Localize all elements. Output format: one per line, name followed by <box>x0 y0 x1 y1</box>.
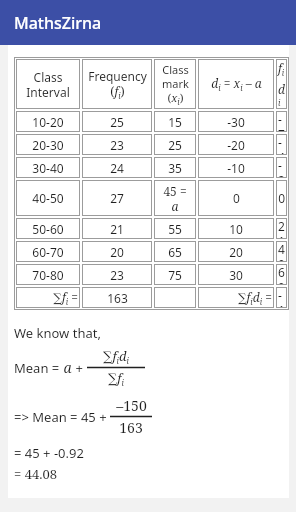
staticText: 24 <box>110 160 124 176</box>
staticText: a <box>63 358 72 377</box>
staticText: 55 <box>168 221 182 237</box>
staticText: –150 <box>116 396 147 415</box>
staticText: 27 <box>110 190 124 206</box>
button[interactable]: MathsZirna app bar <box>0 0 296 45</box>
staticText: 25 <box>110 114 124 130</box>
staticText: 20 <box>110 244 124 260</box>
staticText: 21 <box>110 221 124 237</box>
staticText: => Mean = 45 + <box>14 408 110 426</box>
staticText: 10-20 <box>32 114 64 130</box>
staticText: ∑fidi = <box>200 289 272 307</box>
staticText: 70-80 <box>32 267 64 283</box>
staticText: 35 <box>168 160 182 176</box>
staticText: ∑fi <box>108 369 124 388</box>
staticText: 25 <box>168 137 182 153</box>
staticText: + <box>72 359 87 377</box>
staticText: 75 <box>168 267 182 283</box>
staticText: 20 <box>229 244 243 260</box>
staticText: Mean = <box>14 359 63 377</box>
staticText: -20 <box>227 137 245 153</box>
staticText: 50-60 <box>32 221 64 237</box>
staticText: -460 <box>278 134 285 155</box>
staticText: ∑fi = <box>18 289 78 307</box>
staticText: 60-70 <box>32 244 64 260</box>
staticText: 23 <box>110 267 124 283</box>
staticText: 163 <box>119 418 143 437</box>
staticText: Frequency (fi) <box>88 68 147 101</box>
staticText: 30-40 <box>32 160 64 176</box>
staticText: -750 <box>278 111 285 132</box>
staticText: 0 <box>278 190 285 206</box>
staticText: -30 <box>227 114 245 130</box>
staticText: -10 <box>227 160 245 176</box>
staticText: 20-30 <box>32 137 64 153</box>
staticText: Class mark (xi) <box>162 62 189 107</box>
staticText: MathsZirna <box>14 12 102 34</box>
staticText: 30 <box>229 267 243 283</box>
staticText: 45 = a <box>163 183 187 214</box>
staticText: 0 <box>233 190 240 206</box>
staticText: = 44.08 <box>14 465 289 483</box>
staticText: We know that, <box>14 324 289 342</box>
staticText: -150 <box>278 287 285 308</box>
staticText: di = xi – a <box>211 75 262 93</box>
staticText: ∑fidi <box>103 347 129 366</box>
staticText: 690 <box>278 264 285 285</box>
staticText: 10 <box>229 221 243 237</box>
staticText: 400 <box>278 241 285 262</box>
staticText: Class Interval <box>26 69 70 100</box>
staticText: 163 <box>107 290 128 306</box>
staticText: 40-50 <box>32 190 64 206</box>
staticText: 15 <box>168 114 182 130</box>
staticText: fidi <box>278 60 285 108</box>
staticText: 23 <box>110 137 124 153</box>
staticText: -240 <box>278 157 285 178</box>
staticText: = 45 + -0.92 <box>14 444 289 462</box>
staticText: 210 <box>278 218 285 239</box>
staticText: 65 <box>168 244 182 260</box>
